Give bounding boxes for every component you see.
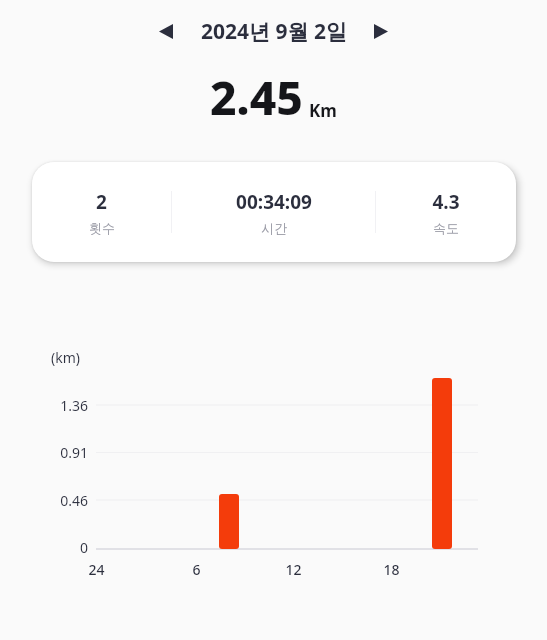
button[interactable]: Previous day [150, 16, 182, 46]
staticText: (km) [51, 348, 80, 367]
staticText: 6 [192, 560, 201, 579]
staticText: 00:34:09 [236, 189, 312, 215]
staticText: 0 [79, 538, 88, 557]
staticText: 18 [383, 560, 400, 579]
button[interactable]: 00:34:09 [172, 162, 375, 262]
staticText: 2024년 9월 2일 [201, 17, 347, 46]
staticText: 0.91 [60, 443, 88, 462]
staticText: Km [309, 99, 337, 122]
staticText: 속도 [433, 220, 459, 236]
button[interactable]: 2 [32, 162, 171, 262]
staticText: 12 [285, 560, 302, 579]
staticText: 2.45 [210, 66, 303, 128]
button[interactable]: 4.3 [376, 162, 516, 262]
staticText: 0.46 [60, 491, 88, 510]
button[interactable]: 2024년 9월 2일 [190, 12, 357, 50]
staticText: 4.3 [432, 189, 460, 215]
button[interactable]: 2 [32, 162, 516, 262]
staticText: 2 [96, 189, 107, 215]
button[interactable]: Next day [365, 16, 397, 46]
staticText: 1.36 [60, 396, 88, 415]
staticText: 24 [88, 560, 105, 579]
staticText: 횟수 [89, 220, 115, 236]
staticText: 시간 [261, 220, 287, 236]
